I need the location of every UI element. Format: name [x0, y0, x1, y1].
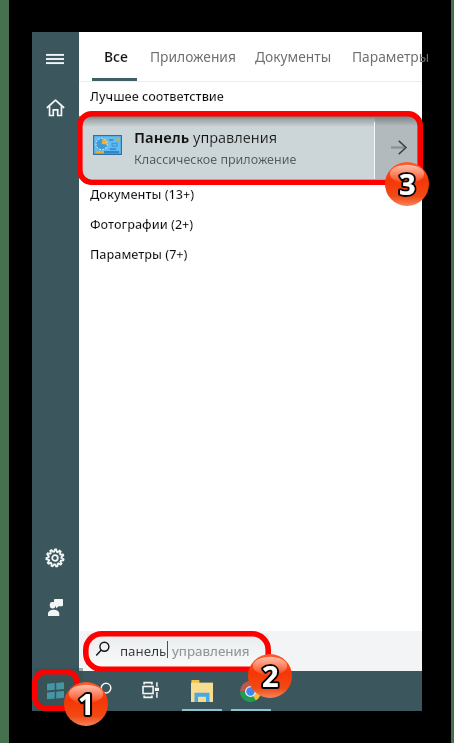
- staticText: Приложения: [150, 47, 236, 66]
- staticText: Все: [104, 47, 128, 66]
- staticText: 3: [399, 164, 416, 203]
- staticText: Панель управления: [134, 127, 278, 147]
- staticText: панель: [120, 642, 167, 660]
- button[interactable]: Все: [92, 37, 116, 75]
- button[interactable]: File Explorer: [181, 671, 223, 711]
- staticText: Документы (13+): [90, 186, 195, 203]
- button[interactable]: Параметры: [340, 37, 418, 75]
- button[interactable]: Search: [83, 670, 125, 710]
- button[interactable]: Task view: [130, 670, 172, 710]
- staticText: Параметры (7+): [90, 246, 188, 263]
- staticText: Классическое приложение: [134, 151, 297, 168]
- button[interactable]: Приложения: [138, 37, 224, 75]
- button[interactable]: Settings: [32, 538, 78, 578]
- button[interactable]: Send feedback: [32, 587, 78, 627]
- staticText: 1: [78, 684, 95, 723]
- staticText: Лучшее соответствие: [90, 88, 224, 105]
- staticText: 3: [399, 164, 416, 203]
- button[interactable]: Search input: [87, 634, 269, 668]
- staticText: 2: [262, 656, 279, 695]
- staticText: управления: [172, 642, 250, 660]
- staticText: Параметры: [352, 47, 430, 66]
- button[interactable]: Home: [32, 87, 78, 127]
- staticText: 1: [78, 684, 95, 723]
- button[interactable]: Open Control Panel: [375, 116, 418, 179]
- staticText: Документы: [255, 47, 332, 66]
- button[interactable]: Menu: [32, 39, 78, 79]
- button[interactable]: Start: [34, 668, 83, 711]
- button[interactable]: [79, 116, 418, 179]
- button[interactable]: Google Chrome: [229, 671, 271, 711]
- staticText: Фотографии (2+): [90, 216, 194, 233]
- button[interactable]: Документы: [243, 37, 320, 75]
- staticText: 2: [262, 656, 279, 695]
